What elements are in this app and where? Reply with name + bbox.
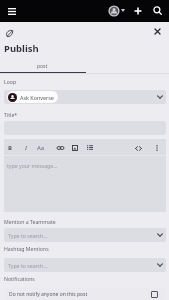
staticText: Publish xyxy=(4,42,39,55)
button[interactable]: Type to search... xyxy=(4,228,166,242)
button[interactable]: Ask Konverse xyxy=(4,90,166,104)
button[interactable]: I xyxy=(25,144,27,152)
button[interactable]: post xyxy=(0,60,85,72)
staticText: Title* xyxy=(4,111,18,118)
button[interactable]: Link xyxy=(56,143,65,152)
button[interactable]: Search xyxy=(151,4,164,17)
button[interactable]: B xyxy=(8,144,12,152)
button[interactable]: Insert image xyxy=(70,143,79,152)
button[interactable]: Type to search... xyxy=(4,258,166,272)
staticText: Loop xyxy=(4,78,17,85)
staticText: Ask Konverse xyxy=(20,94,54,101)
button[interactable]: Code block xyxy=(133,143,143,153)
button[interactable]: More options xyxy=(152,143,161,152)
button[interactable]: Aa xyxy=(37,144,45,152)
button[interactable]: Menu xyxy=(5,4,19,18)
staticText: Type to search... xyxy=(8,232,48,239)
button[interactable]: Do not notify anyone on this post xyxy=(6,288,165,300)
staticText: Notifications xyxy=(4,275,35,282)
staticText: Do not notify anyone on this post xyxy=(9,291,88,298)
staticText: post xyxy=(37,63,48,70)
staticText: Mention a Teammate xyxy=(4,218,56,225)
button[interactable]: Close xyxy=(151,25,164,38)
button[interactable]: type your message... xyxy=(4,156,166,212)
staticText: Type to search... xyxy=(8,262,48,269)
staticText: type your message... xyxy=(7,162,58,169)
staticText: Hashtag Mentions xyxy=(4,245,49,252)
button[interactable]: Add xyxy=(131,4,144,17)
button[interactable]: Account xyxy=(107,4,120,17)
button[interactable]: List xyxy=(85,143,94,152)
